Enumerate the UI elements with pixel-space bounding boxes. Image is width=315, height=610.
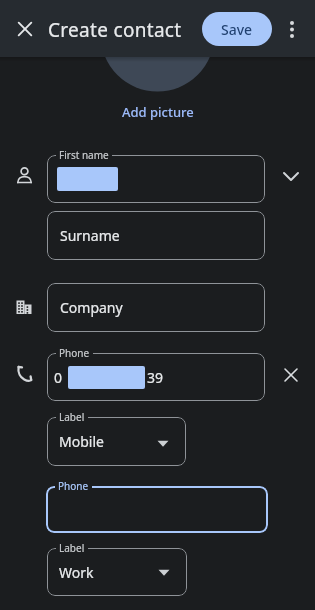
- staticText: Company: [60, 298, 123, 317]
- button[interactable]: [280, 364, 302, 386]
- staticText: Phone: [58, 479, 89, 493]
- button[interactable]: Save: [202, 12, 272, 46]
- button[interactable]: [46, 486, 268, 533]
- staticText: Work: [59, 563, 94, 582]
- button[interactable]: Mobile: [47, 417, 186, 466]
- button[interactable]: Work: [47, 548, 187, 596]
- button[interactable]: [47, 155, 265, 203]
- staticText: First name: [59, 148, 109, 162]
- button[interactable]: Company: [47, 283, 265, 332]
- button[interactable]: [280, 13, 304, 45]
- button[interactable]: [9, 13, 41, 45]
- button[interactable]: 0: [47, 353, 265, 401]
- staticText: 39: [147, 368, 164, 387]
- staticText: Phone: [59, 346, 90, 360]
- button[interactable]: Add picture: [122, 103, 194, 121]
- staticText: Label: [59, 410, 85, 424]
- staticText: Surname: [60, 226, 120, 245]
- staticText: Label: [59, 541, 85, 555]
- button[interactable]: Surname: [47, 211, 265, 260]
- staticText: Save: [221, 20, 253, 39]
- staticText: Create contact: [48, 17, 182, 43]
- staticText: Mobile: [59, 432, 104, 451]
- button[interactable]: [279, 161, 303, 191]
- staticText: 0: [54, 368, 63, 387]
